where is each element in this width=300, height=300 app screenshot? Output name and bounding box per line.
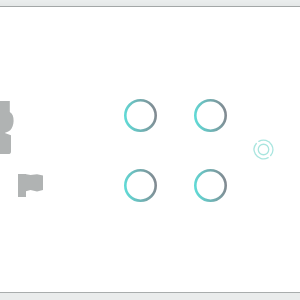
other: Loading [124,169,157,202]
button[interactable]: Account [0,101,16,154]
other: Loading [194,99,227,132]
other: Loading [124,99,157,132]
other: Syncing [253,139,274,160]
button[interactable]: Flagged [18,174,43,197]
other: Loading [194,169,227,202]
